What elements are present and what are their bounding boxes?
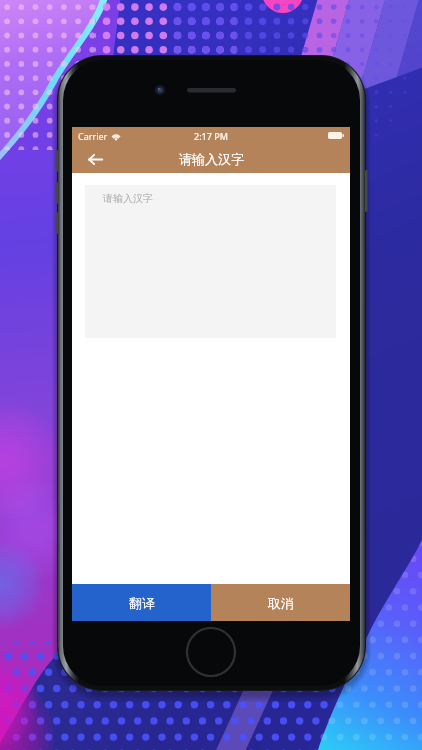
staticText: 翻译 — [129, 595, 155, 611]
button[interactable]: 翻译 — [72, 584, 211, 621]
staticText: Carrier — [78, 130, 108, 142]
staticText: 2:17 PM — [194, 130, 228, 142]
staticText: 取消 — [268, 595, 294, 611]
button[interactable]: 取消 — [211, 584, 350, 621]
staticText: 请输入汉字 — [179, 151, 244, 167]
button[interactable]: 请输入汉字 — [85, 185, 336, 338]
staticText: 请输入汉字 — [103, 192, 153, 205]
button[interactable]: Back — [81, 145, 109, 173]
